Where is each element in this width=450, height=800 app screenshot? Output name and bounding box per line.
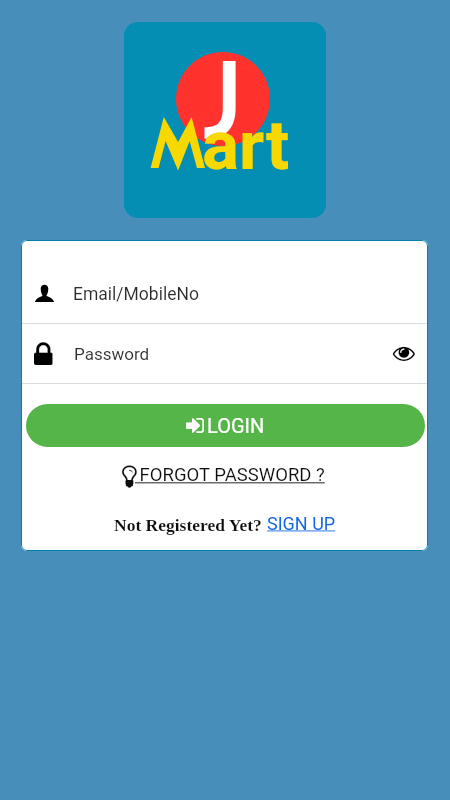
button[interactable] <box>21 240 428 323</box>
staticText: art <box>202 105 290 186</box>
staticText: Not Registered Yet? <box>114 515 267 534</box>
staticText: LOGIN <box>207 414 265 437</box>
button[interactable]: Show password <box>383 332 425 374</box>
staticText: Password <box>74 344 150 364</box>
staticText:  <box>186 415 204 436</box>
staticText: Email/MobileNo <box>73 284 199 305</box>
button[interactable]:  <box>26 404 425 447</box>
button[interactable] <box>21 323 428 383</box>
staticText:  <box>393 342 416 364</box>
staticText:  <box>34 340 53 369</box>
button[interactable]: SIGN UP <box>267 513 336 534</box>
staticText: FORGOT PASSWORD ? <box>135 464 325 486</box>
staticText:  <box>122 464 137 490</box>
button[interactable]:  <box>122 462 330 488</box>
